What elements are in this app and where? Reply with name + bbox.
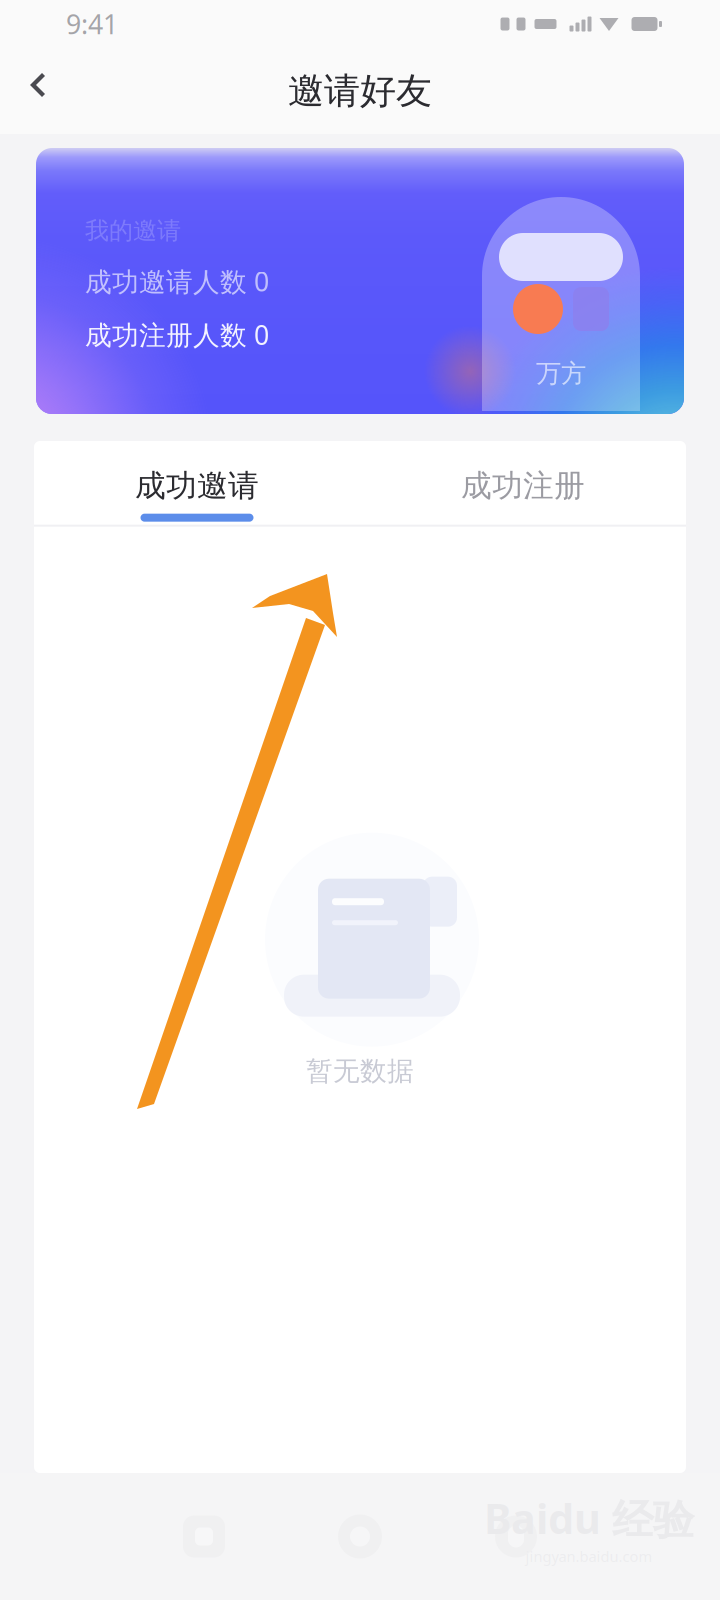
button[interactable]: 成功邀请: [34, 441, 360, 525]
staticText: 暂无数据: [306, 1055, 414, 1087]
button[interactable]: Back: [22, 63, 78, 119]
staticText: 万方: [536, 358, 586, 389]
staticText: 我的邀请: [85, 216, 181, 245]
button[interactable]: 成功注册: [360, 441, 686, 525]
staticText: 成功邀请: [135, 467, 259, 505]
staticText: 9:41: [66, 6, 118, 42]
staticText: Baidu 经验: [484, 1490, 694, 1545]
staticText: 成功邀请人数 0: [85, 263, 269, 299]
staticText: 成功注册: [461, 467, 585, 505]
button[interactable]: 我的: [438, 1490, 594, 1582]
staticText: 成功注册人数 0: [85, 317, 269, 352]
staticText: 邀请好友: [288, 69, 432, 113]
